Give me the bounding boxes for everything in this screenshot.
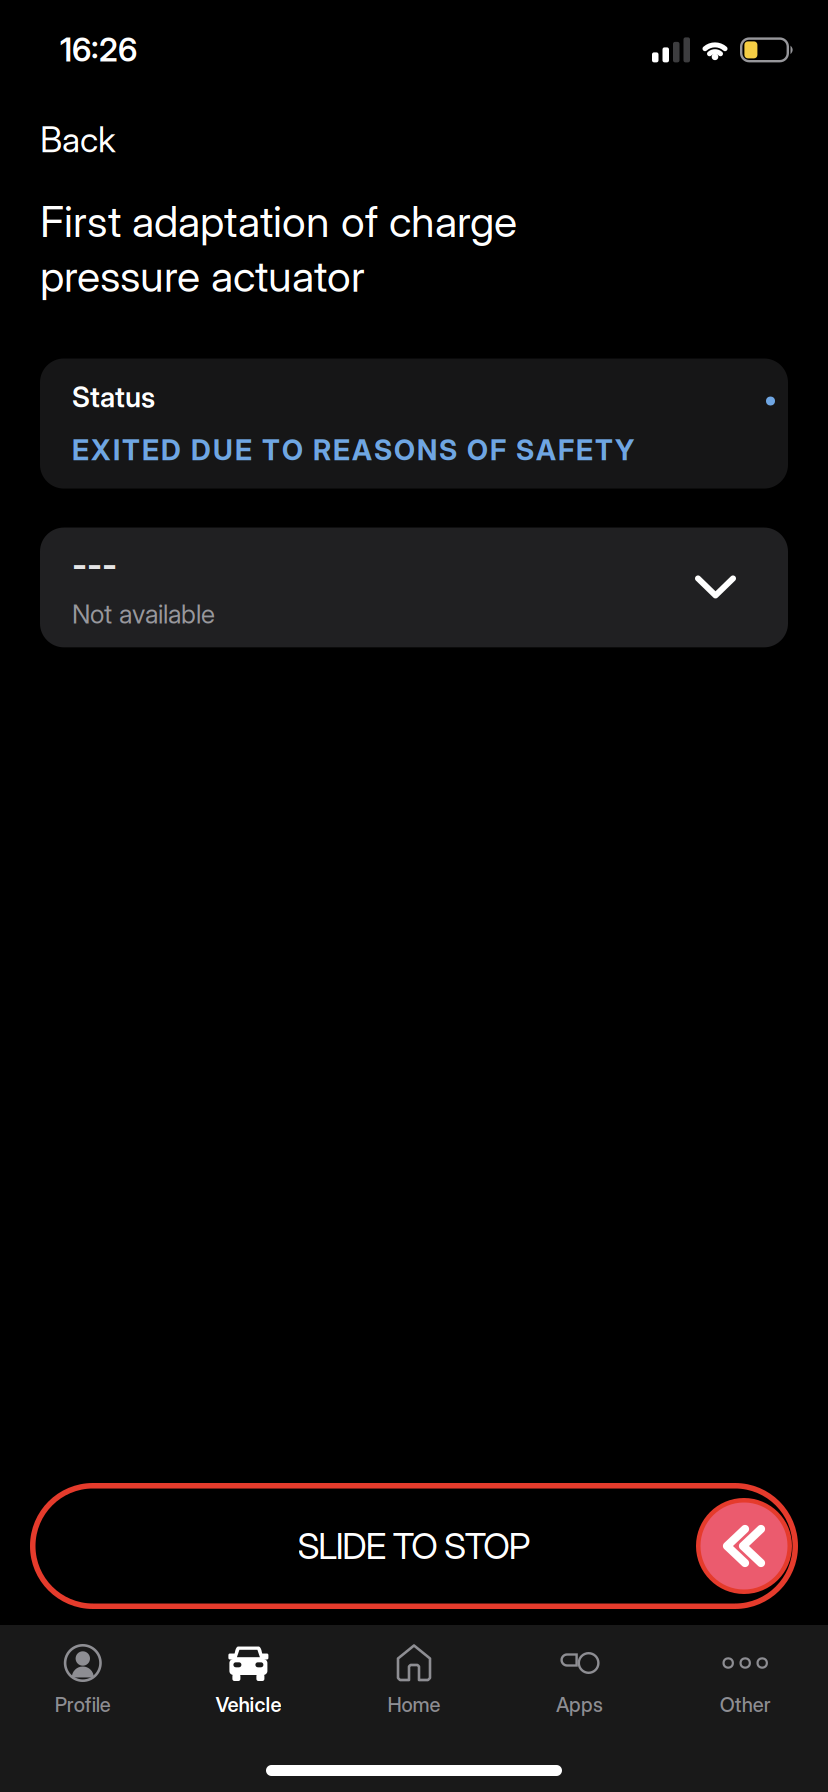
- staticText: Status: [72, 380, 155, 413]
- button[interactable]: Profile: [0, 1644, 166, 1717]
- staticText: Apps: [556, 1693, 603, 1717]
- button[interactable]: SLIDE TO STOP: [30, 1483, 798, 1609]
- staticText: Home: [387, 1693, 440, 1717]
- staticText: Vehicle: [215, 1693, 281, 1717]
- button[interactable]: Other: [662, 1644, 828, 1717]
- button[interactable]: Back: [40, 119, 116, 160]
- button[interactable]: Vehicle: [166, 1644, 331, 1717]
- staticText: Other: [720, 1693, 771, 1717]
- button[interactable]: ---: [40, 528, 788, 647]
- staticText: E X I T E D D U E T O R E A S O N S O F …: [72, 433, 634, 466]
- button[interactable]: Home: [331, 1644, 497, 1717]
- button[interactable]: Apps: [497, 1644, 662, 1717]
- staticText: SLIDE TO STOP: [297, 1525, 530, 1567]
- staticText: 16:26: [60, 31, 137, 69]
- staticText: Back: [40, 119, 116, 160]
- staticText: ---: [72, 545, 117, 585]
- staticText: First adaptation of charge pressure actu…: [40, 196, 517, 301]
- staticText: Profile: [55, 1693, 111, 1717]
- staticText: Not available: [72, 599, 215, 629]
